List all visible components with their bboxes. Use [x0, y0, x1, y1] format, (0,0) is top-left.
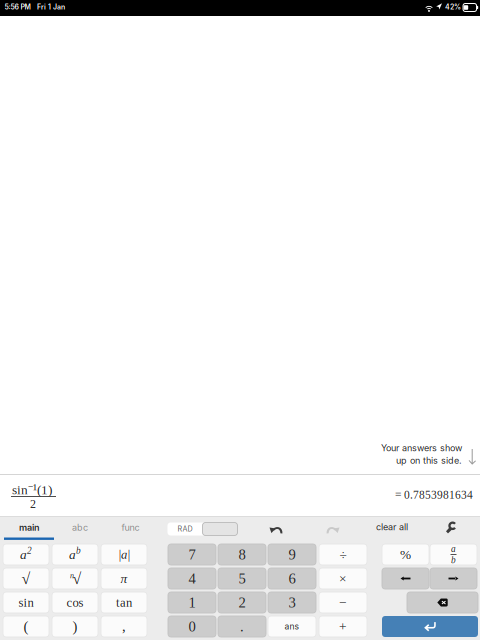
staticText: , — [122, 618, 126, 635]
staticText: 2 — [238, 594, 245, 611]
button[interactable]: a squared — [3, 544, 49, 565]
staticText: √ — [21, 570, 30, 587]
staticText: cos — [66, 595, 83, 609]
button[interactable]: main — [5, 519, 54, 536]
staticText: 2 — [30, 497, 36, 511]
button[interactable]: Backspace — [407, 592, 478, 613]
button[interactable]: π — [101, 568, 147, 589]
staticText: × — [339, 571, 347, 586]
staticText: ) — [72, 618, 77, 635]
staticText: 2 — [27, 545, 32, 556]
button[interactable]: sin — [3, 592, 49, 613]
button[interactable]: 6 — [268, 568, 316, 589]
button[interactable]: 9 — [268, 544, 316, 565]
button[interactable]: 3 — [268, 592, 316, 613]
button[interactable]: Enter — [382, 616, 478, 637]
button[interactable]: Move left — [382, 568, 429, 589]
staticText: 8 — [238, 546, 245, 563]
staticText: a — [20, 547, 27, 562]
button[interactable]: 0 — [168, 616, 216, 637]
button[interactable]: Settings — [446, 521, 457, 533]
staticText: 1 — [188, 594, 195, 611]
button[interactable]: func — [106, 519, 155, 536]
staticText: a — [69, 547, 76, 562]
staticText: 3 — [288, 594, 295, 611]
button[interactable]: ÷ — [319, 544, 367, 565]
button[interactable]: ) — [52, 616, 98, 637]
staticText: sin — [18, 595, 33, 609]
button[interactable]: 5 — [218, 568, 266, 589]
staticText: ÷ — [339, 547, 346, 562]
staticText: a — [451, 544, 456, 554]
staticText: √ — [72, 570, 81, 587]
staticText: sin⁻¹(1) — [12, 480, 52, 498]
staticText: − — [339, 595, 347, 610]
staticText: . — [240, 618, 244, 635]
button[interactable]: ans — [268, 616, 316, 637]
button[interactable]: 2 — [218, 592, 266, 613]
button[interactable]: cos — [52, 592, 98, 613]
button[interactable]: × — [319, 568, 367, 589]
staticText: 4 — [188, 570, 195, 587]
button[interactable]: square root — [3, 568, 49, 589]
staticText: Your answers show — [381, 442, 462, 453]
staticText: abc — [72, 522, 88, 533]
staticText: π — [120, 571, 127, 586]
staticText: 5 — [238, 570, 245, 587]
button[interactable]: 7 — [168, 544, 216, 565]
button[interactable]: ( — [3, 616, 49, 637]
staticText: ( — [23, 618, 28, 635]
button[interactable]: 4 — [168, 568, 216, 589]
button[interactable]: a to the b — [52, 544, 98, 565]
staticText: % — [400, 547, 411, 562]
staticText: ans — [284, 621, 299, 632]
staticText: RAD — [177, 525, 192, 533]
staticText: tan — [116, 595, 132, 609]
button[interactable]: RAD — [167, 522, 237, 535]
staticText: n — [70, 571, 74, 580]
staticText: + — [339, 619, 347, 634]
button[interactable]: 1 — [168, 592, 216, 613]
button[interactable]: tan — [101, 592, 147, 613]
button[interactable]: Undo — [269, 525, 282, 533]
staticText: 6 — [288, 570, 295, 587]
staticText: main — [19, 522, 40, 533]
staticText: clear all — [376, 521, 408, 532]
staticText: b — [451, 555, 456, 565]
button[interactable]: Move right — [430, 568, 477, 589]
button[interactable]: a over b — [430, 544, 477, 565]
staticText: 42% — [445, 3, 461, 11]
staticText: func — [121, 522, 139, 533]
staticText: 7 — [188, 546, 195, 563]
staticText: = 0.7853981634 — [395, 489, 473, 501]
button[interactable]: + — [319, 616, 367, 637]
button[interactable]: abc — [55, 519, 104, 536]
button[interactable]: 8 — [218, 544, 266, 565]
staticText: 0 — [188, 618, 195, 635]
button[interactable]: clear all — [374, 519, 410, 535]
staticText: |a| — [118, 547, 130, 561]
staticText: 9 — [288, 546, 295, 563]
button[interactable]: % — [382, 544, 429, 565]
button[interactable]: , — [101, 616, 147, 637]
staticText: 5:56 PM — [4, 3, 30, 11]
staticText: up on this side. — [396, 455, 462, 466]
button[interactable]: − — [319, 592, 367, 613]
button[interactable]: . — [218, 616, 266, 637]
staticText: Fri 1 Jan — [37, 3, 65, 11]
staticText: b — [76, 545, 81, 556]
button[interactable]: nth root — [52, 568, 98, 589]
button[interactable]: Redo — [326, 525, 339, 533]
button[interactable]: |a| — [101, 544, 147, 565]
